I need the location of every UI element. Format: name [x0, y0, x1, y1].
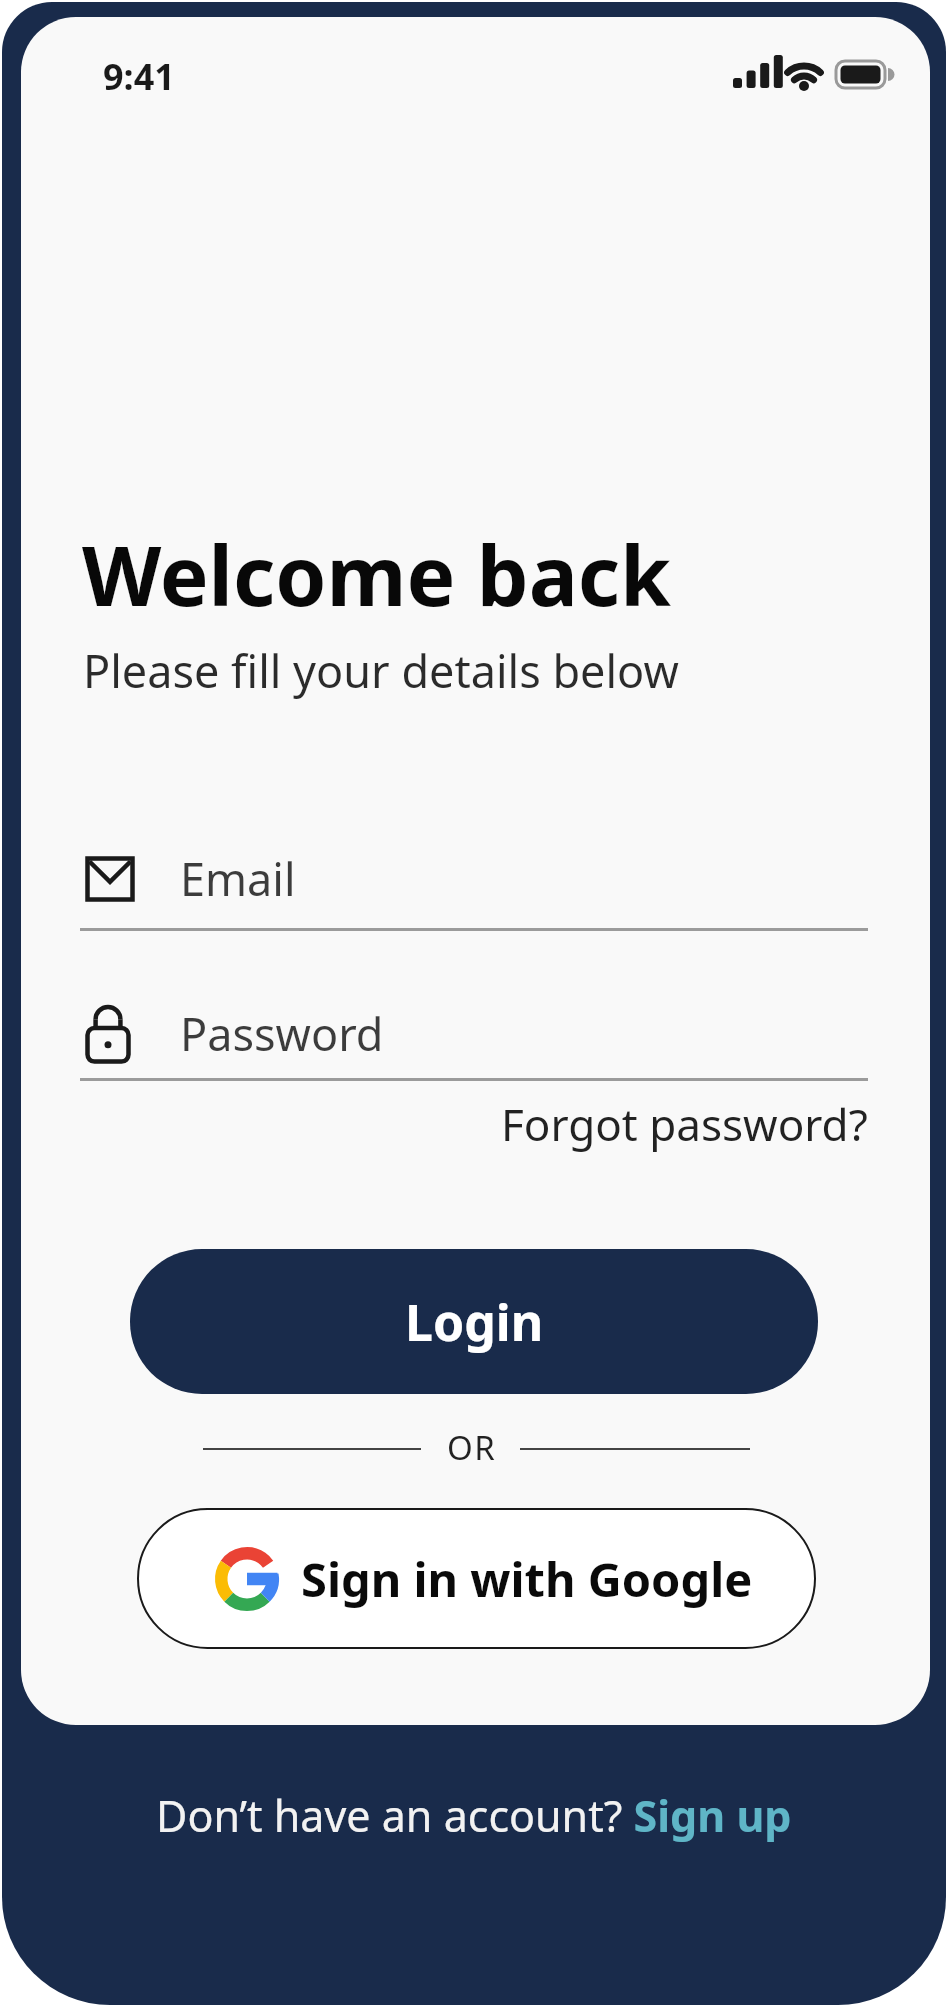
staticText: Password — [180, 1003, 384, 1064]
staticText: Please fill your details below — [83, 640, 679, 701]
button[interactable]: Email — [85, 848, 875, 909]
staticText: Email — [180, 848, 296, 909]
button[interactable]: Sign in with Google — [137, 1508, 816, 1649]
button[interactable]: Forgot password? — [501, 1094, 868, 1154]
button[interactable]: Don’t have an account? Sign up — [0, 1786, 948, 1845]
staticText: Welcome back — [82, 518, 671, 630]
button[interactable]: Login — [130, 1249, 818, 1394]
staticText: 9:41 — [103, 52, 175, 101]
staticText: Don’t have an account? Sign up — [156, 1786, 792, 1845]
staticText: Sign in with Google — [301, 1547, 753, 1611]
staticText: OR — [447, 1425, 497, 1470]
staticText: Login — [405, 1288, 544, 1356]
button[interactable]: Password — [85, 1003, 875, 1064]
